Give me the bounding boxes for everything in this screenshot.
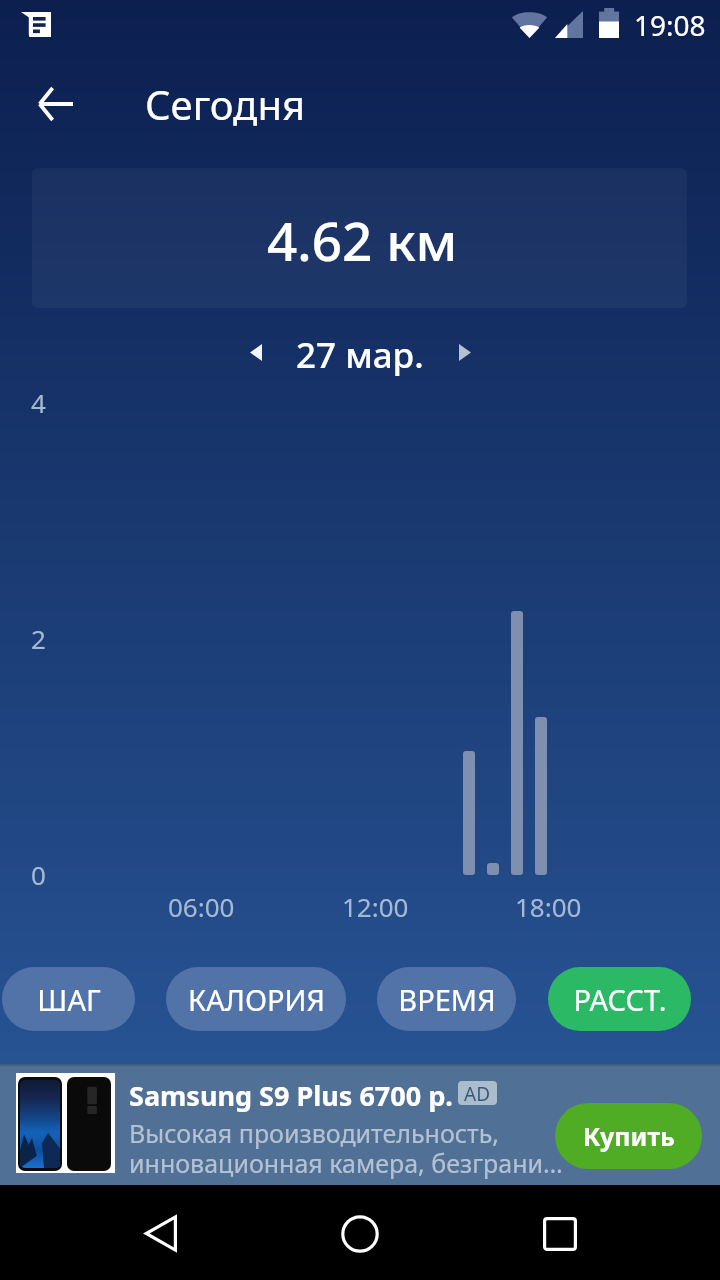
staticText: 06:00 <box>168 889 235 924</box>
button[interactable]: Home <box>315 1185 405 1280</box>
staticText: ВРЕМЯ <box>398 980 496 1019</box>
staticText: 19:08 <box>634 6 706 44</box>
button[interactable]: 4.62 км <box>32 168 687 308</box>
button[interactable]: Previous day <box>232 327 277 377</box>
button[interactable]: Купить <box>555 1103 702 1169</box>
staticText: 18:00 <box>515 889 582 924</box>
staticText: Купить <box>583 1119 675 1153</box>
staticText: AD <box>464 1081 491 1105</box>
staticText: ШАГ <box>37 980 101 1019</box>
button[interactable]: Next day <box>443 327 488 377</box>
staticText: Высокая производительность, <box>129 1116 500 1150</box>
staticText: 4.62 км <box>267 204 458 276</box>
staticText: 2 <box>31 621 46 656</box>
staticText: КАЛОРИЯ <box>188 980 325 1019</box>
staticText: 27 мар. <box>296 331 424 379</box>
button[interactable]: Recents <box>515 1185 605 1280</box>
staticText: РАССТ. <box>573 980 667 1019</box>
staticText: 4 <box>31 385 46 420</box>
button[interactable]: ШАГ <box>2 967 135 1031</box>
staticText: Samsung S9 Plus 6700 р. <box>129 1077 453 1114</box>
button[interactable]: Samsung S9 Plus 6700 р. <box>0 1064 720 1185</box>
staticText: 12:00 <box>342 889 409 924</box>
button[interactable]: КАЛОРИЯ <box>166 967 346 1031</box>
staticText: Сегодня <box>145 77 306 131</box>
button[interactable]: РАССТ. <box>548 967 691 1031</box>
button[interactable]: Back <box>24 72 88 136</box>
button[interactable]: Back <box>115 1185 205 1280</box>
staticText: инновационная камера, безграни… <box>129 1146 563 1180</box>
staticText: 0 <box>31 857 46 892</box>
button[interactable]: ВРЕМЯ <box>377 967 516 1031</box>
